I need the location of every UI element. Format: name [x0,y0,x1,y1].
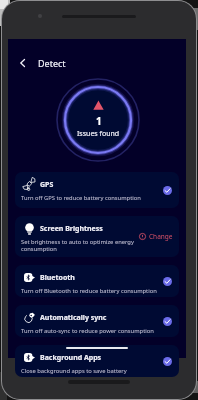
staticText: Turn off GPS to reduce battery consumpti… [21,194,141,202]
button[interactable]: Automatically sync [15,305,179,337]
button[interactable]: Screen Brightness [15,216,179,257]
button[interactable]: Back [15,55,30,70]
staticText: Screen Brightness [40,224,103,234]
staticText: Close background apps to save battery [21,367,127,375]
staticText: Automatically sync [40,313,107,323]
staticText: Change [149,232,173,241]
staticText: 1 [96,114,102,128]
staticText: Turn off auto-sync to reduce power consu… [21,327,154,335]
staticText: Background Apps [40,353,102,363]
staticText: Bluetooth [40,273,75,283]
staticText: Turn off Bluetooth to reduce battery con… [21,287,157,295]
button[interactable]: Bluetooth [15,265,179,297]
button[interactable]: Background Apps [15,345,179,377]
staticText: Detect [38,57,66,69]
button[interactable]: Change [137,230,175,243]
staticText: GPS [40,180,54,190]
button[interactable]: GPS [15,172,179,208]
staticText: Set brightness to auto to optimize energ… [21,238,134,253]
staticText: Issues found [77,129,120,139]
